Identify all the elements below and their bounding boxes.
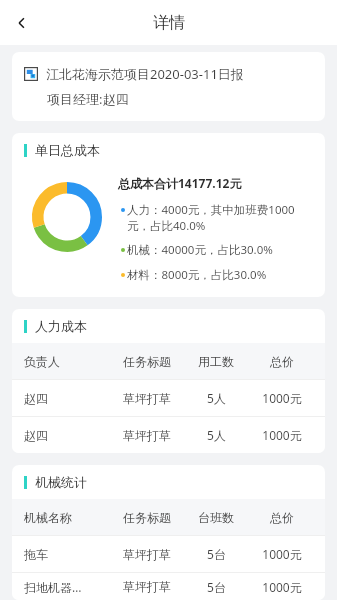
staticText: 人力成本 (35, 318, 87, 334)
staticText: 总价 (270, 510, 294, 525)
staticText: 机械统计 (35, 474, 87, 490)
button[interactable]: 负责人 (12, 343, 325, 379)
staticText: 任务标题 (123, 354, 171, 369)
staticText: 机械名称 (24, 510, 72, 525)
staticText: 人力：4000元，其中加班费1000元，占比40.0% (127, 202, 313, 233)
staticText: 台班数 (198, 510, 234, 525)
staticText: 详情 (153, 13, 185, 33)
staticText: 总成本合计14177.12元 (118, 175, 242, 191)
staticText: 拖车 (24, 547, 48, 562)
staticText: 总价 (270, 354, 294, 369)
staticText: 草坪打草 (123, 428, 171, 443)
button[interactable]: 机械名称 (12, 499, 325, 535)
staticText: 用工数 (198, 354, 234, 369)
button[interactable]: Back (0, 1, 44, 45)
staticText: 5台 (207, 546, 226, 562)
staticText: 草坪打草 (123, 579, 171, 594)
staticText: 5台 (207, 579, 226, 595)
staticText: 扫地机器… (24, 579, 82, 595)
button[interactable]: 赵四 (12, 380, 325, 416)
staticText: 赵四 (24, 428, 48, 443)
staticText: 1000元 (262, 579, 302, 595)
staticText: 1000元 (262, 546, 302, 562)
staticText: 5人 (207, 390, 226, 406)
staticText: 项目经理:赵四 (47, 90, 129, 108)
staticText: 机械：40000元，占比30.0% (127, 242, 273, 258)
staticText: 草坪打草 (123, 391, 171, 406)
staticText: 5人 (207, 427, 226, 443)
button[interactable]: 扫地机器… (12, 573, 325, 600)
staticText: 江北花海示范项目2020-03-11日报 (46, 65, 244, 83)
staticText: 1000元 (262, 390, 302, 406)
staticText: 赵四 (24, 391, 48, 406)
staticText: 材料：8000元，占比30.0% (127, 267, 267, 283)
staticText: 任务标题 (123, 510, 171, 525)
button[interactable]: 拖车 (12, 536, 325, 572)
staticText: 草坪打草 (123, 547, 171, 562)
staticText: 1000元 (262, 427, 302, 443)
staticText: 负责人 (24, 354, 60, 369)
button[interactable]: 江北花海示范项目2020-03-11日报 (12, 52, 325, 121)
staticText: 单日总成本 (35, 142, 100, 158)
button[interactable]: 赵四 (12, 417, 325, 453)
